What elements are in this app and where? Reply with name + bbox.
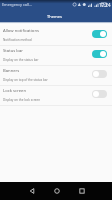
button[interactable]: Off: [92, 90, 107, 98]
staticText: Status bar: [3, 48, 24, 54]
button[interactable]: Recents: [72, 182, 91, 200]
button[interactable]: Status bar: [0, 46, 112, 66]
button[interactable]: Back: [22, 182, 41, 200]
staticText: Lock screen: [3, 88, 27, 94]
staticText: Themes: [47, 14, 62, 19]
staticText: Display on the status bar: [3, 58, 39, 62]
staticText: Emergency call...: [2, 2, 32, 7]
staticText: 17:24: [99, 2, 111, 8]
button[interactable]: Home: [47, 182, 66, 200]
staticText: Allow notifications: [3, 28, 39, 34]
button[interactable]: Allow notifications: [0, 26, 112, 46]
button[interactable]: Banners: [0, 66, 112, 86]
button[interactable]: On: [92, 30, 107, 38]
staticText: Display on the lock screen: [3, 98, 41, 102]
staticText: Notification method: [3, 38, 32, 42]
button[interactable]: On: [92, 50, 107, 58]
button[interactable]: Off: [92, 70, 107, 78]
button[interactable]: Lock screen: [0, 86, 112, 106]
staticText: Display on top of the status bar: [3, 78, 48, 82]
staticText: Banners: [3, 68, 20, 74]
